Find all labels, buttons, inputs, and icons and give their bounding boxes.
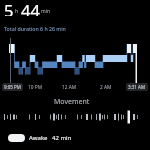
- staticText: 3:31 AM: [128, 84, 146, 90]
- staticText: h: [15, 8, 19, 15]
- staticText: 5: [4, 0, 14, 16]
- staticText: min: [41, 8, 51, 15]
- staticText: Movement: [54, 97, 90, 107]
- staticText: 42 min: [52, 134, 72, 142]
- staticText: 2 AM: [100, 84, 112, 91]
- staticText: 44: [21, 0, 40, 16]
- staticText: Total duration 6 h 26 min: [4, 25, 66, 32]
- staticText: 10 PM: [28, 84, 42, 91]
- button[interactable]: Awake: [8, 134, 72, 142]
- staticText: Awake: [29, 134, 48, 142]
- button[interactable]: 3:31 AM: [126, 83, 148, 91]
- button[interactable]: 9:05 PM: [2, 83, 23, 91]
- staticText: 12 AM: [62, 84, 77, 91]
- staticText: 9:05 PM: [4, 84, 21, 90]
